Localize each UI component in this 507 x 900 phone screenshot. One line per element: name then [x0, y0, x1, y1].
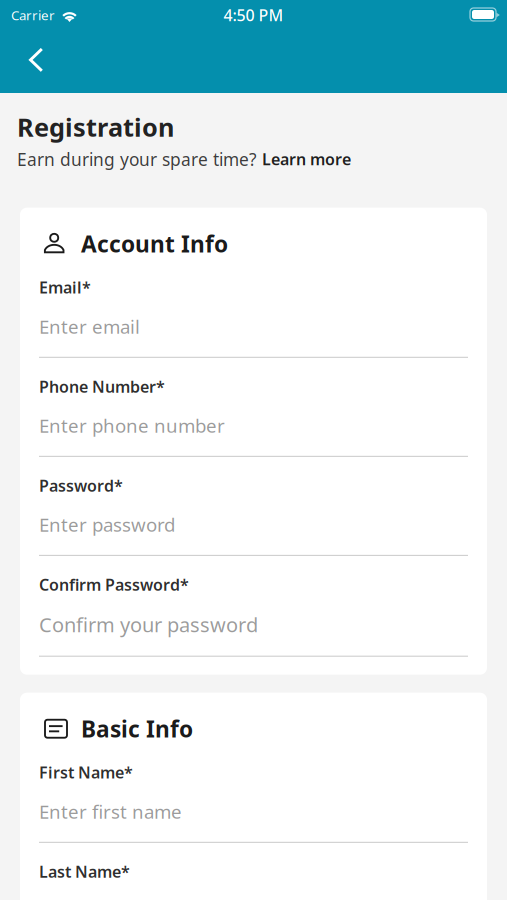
staticText: Enter password [39, 512, 175, 537]
staticText: Learn more [262, 148, 351, 170]
staticText: Enter phone number [39, 413, 225, 438]
staticText: Basic Info [81, 714, 193, 744]
staticText: Carrier [11, 6, 55, 24]
staticText: 4:50 PM [223, 4, 283, 26]
staticText: Phone Number* [39, 376, 165, 397]
button[interactable]: Learn more [262, 148, 351, 170]
staticText: Password* [39, 475, 123, 496]
staticText: Earn during your spare time? [17, 148, 262, 171]
staticText: Email* [39, 277, 91, 298]
staticText: Enter email [39, 314, 140, 339]
staticText: Enter first name [39, 799, 182, 824]
staticText: Confirm your password [39, 611, 258, 638]
staticText: Registration [17, 110, 174, 144]
staticText: First Name* [39, 762, 133, 783]
staticText: Confirm Password* [39, 574, 189, 595]
staticText: Last Name* [39, 861, 130, 882]
button[interactable]: Back [13, 37, 59, 83]
staticText: Account Info [81, 229, 228, 259]
